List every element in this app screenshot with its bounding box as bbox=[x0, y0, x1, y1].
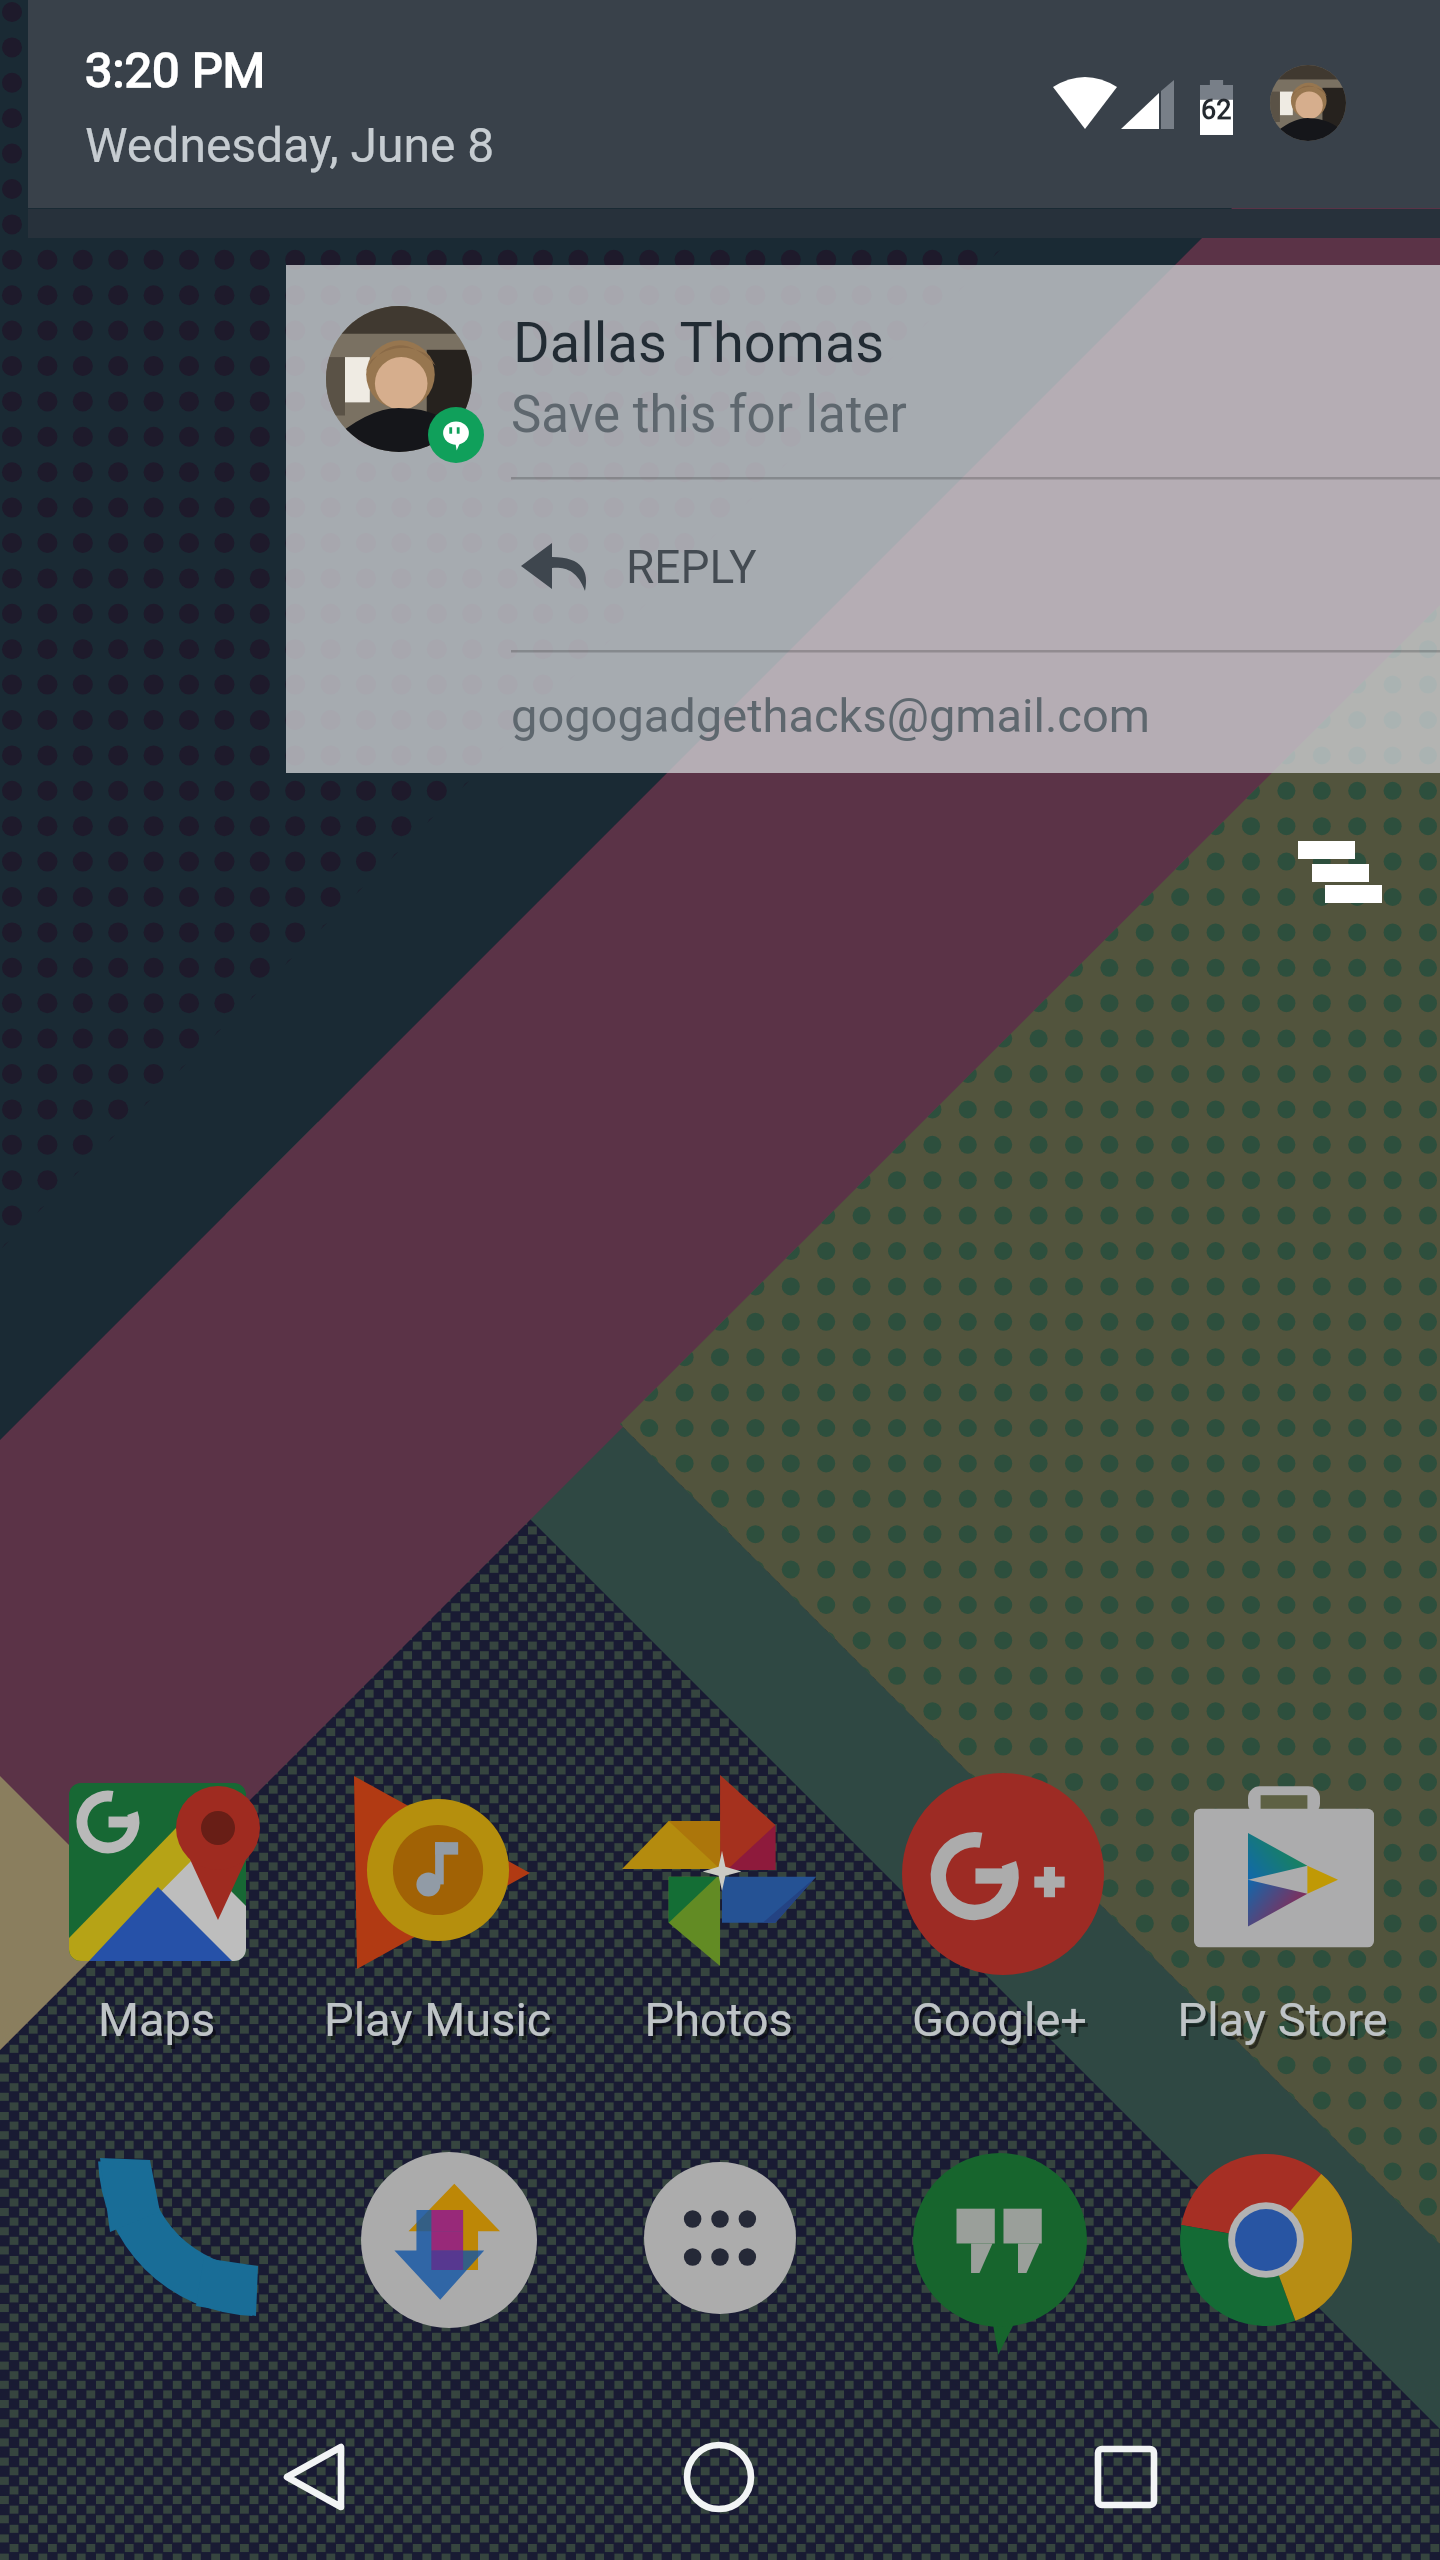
button[interactable]: Play Music bbox=[318, 1770, 558, 2050]
button[interactable]: Photos bbox=[602, 1770, 842, 2050]
button[interactable]: Status bar, 3:20 PM Wednesday, June 8 bbox=[28, 0, 1440, 208]
button[interactable]: Hangouts bbox=[891, 2140, 1091, 2340]
button[interactable]: Reply bbox=[511, 480, 1440, 650]
button[interactable]: Back bbox=[220, 2400, 420, 2560]
button[interactable]: Chrome bbox=[1166, 2140, 1366, 2340]
button[interactable]: Google+ bbox=[883, 1770, 1123, 2050]
button[interactable]: Photos Backup bbox=[349, 2140, 549, 2340]
button[interactable]: Apps bbox=[620, 2140, 820, 2340]
button[interactable]: gogogadgethacks@gmail.com bbox=[511, 652, 1440, 773]
button[interactable]: Play Store bbox=[1164, 1770, 1404, 2050]
button[interactable]: Phone bbox=[78, 2140, 278, 2340]
button[interactable]: Dallas Thomas, Save this for later notif… bbox=[286, 265, 1440, 478]
button[interactable]: Recent apps bbox=[1030, 2400, 1230, 2560]
button[interactable]: Home bbox=[620, 2400, 820, 2560]
button[interactable]: Maps bbox=[37, 1770, 277, 2050]
